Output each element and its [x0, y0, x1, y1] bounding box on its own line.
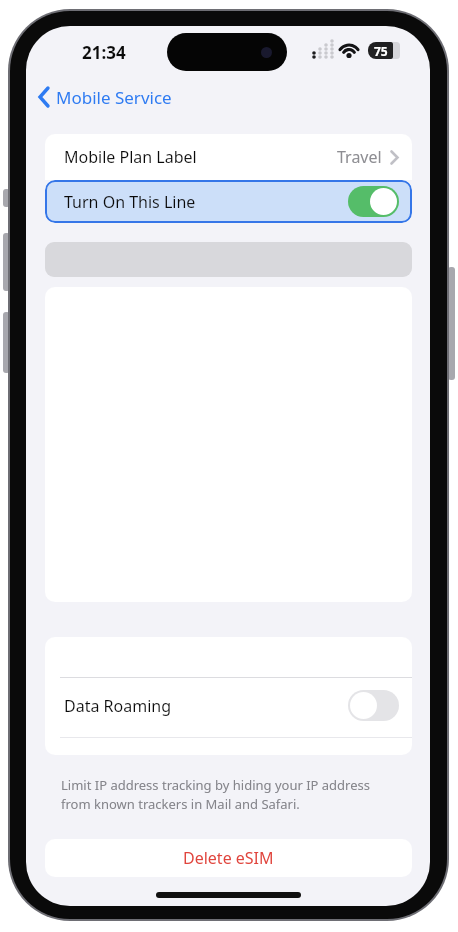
staticText: Mobile Service	[56, 86, 172, 109]
button[interactable]: Delete eSIM	[45, 839, 412, 877]
button[interactable]: Mobile Plan Label	[45, 134, 412, 180]
staticText: Delete eSIM	[183, 847, 274, 869]
button[interactable]	[348, 186, 399, 217]
button[interactable]	[348, 690, 399, 721]
button[interactable]: Mobile Service	[36, 84, 172, 110]
staticText: Mobile Plan Label	[64, 146, 197, 168]
staticText: Travel	[337, 146, 382, 168]
staticText: Data Roaming	[64, 695, 171, 717]
staticText: 21:34	[82, 41, 126, 64]
staticText: 75	[374, 43, 388, 59]
button[interactable]: Data Roaming	[45, 678, 412, 733]
staticText: Turn On This Line	[64, 191, 196, 213]
button[interactable]: Turn On This Line	[45, 180, 412, 223]
staticText: Limit IP address tracking by hiding your…	[61, 776, 406, 813]
